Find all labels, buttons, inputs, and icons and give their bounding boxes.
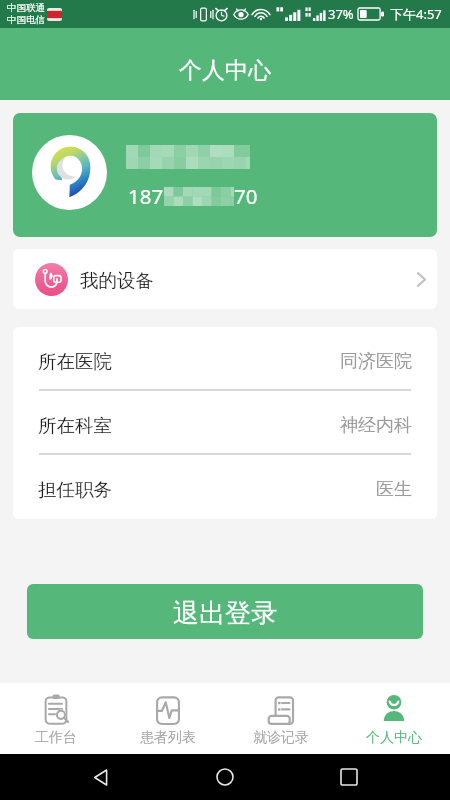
staticText: 神经内科 <box>340 414 412 437</box>
staticText: 同济医院 <box>340 350 412 373</box>
staticText: 所在医院 <box>38 350 112 373</box>
button[interactable]: 187 <box>13 113 437 237</box>
staticText: 个人中心 <box>179 56 271 85</box>
staticText: 患者列表 <box>140 729 196 747</box>
button[interactable]: 退出登录 <box>27 584 423 639</box>
staticText: 187 <box>128 182 164 210</box>
staticText: 我的设备 <box>80 269 154 292</box>
staticText: 下午4:57 <box>390 5 442 23</box>
button[interactable]: 患者列表 <box>112 683 224 754</box>
button[interactable]: 所在医院 <box>13 327 437 391</box>
button[interactable]: Recents <box>326 754 372 800</box>
staticText: 个人中心 <box>366 729 422 747</box>
button[interactable]: 个人中心 <box>337 683 450 754</box>
button[interactable]: Back <box>78 754 124 800</box>
button[interactable]: 就诊记录 <box>224 683 337 754</box>
staticText: 中国联通 <box>7 2 45 14</box>
button[interactable]: 担任职务 <box>13 455 437 519</box>
button[interactable]: 工作台 <box>0 683 112 754</box>
staticText: 退出登录 <box>173 597 277 630</box>
staticText: 70 <box>234 182 258 210</box>
button[interactable]: 所在科室 <box>13 391 437 455</box>
staticText: 37% <box>328 5 354 23</box>
button[interactable]: Home <box>202 754 248 800</box>
staticText: 中国电信 <box>7 14 45 26</box>
button[interactable]: 我的设备 <box>13 249 437 309</box>
staticText: 工作台 <box>35 729 77 747</box>
staticText: 所在科室 <box>38 414 112 437</box>
staticText: 就诊记录 <box>253 729 309 747</box>
staticText: 担任职务 <box>38 478 112 501</box>
staticText: 医生 <box>376 478 412 501</box>
